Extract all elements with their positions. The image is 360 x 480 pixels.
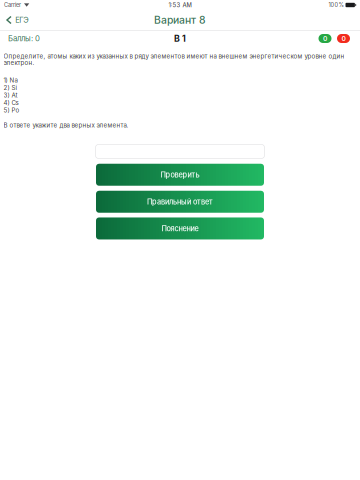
staticText: Carrier	[4, 2, 21, 8]
staticText: Вариант 8	[154, 14, 206, 26]
staticText: 0	[323, 34, 327, 43]
staticText: В 1	[174, 33, 186, 44]
staticText: Пояснение	[161, 224, 198, 233]
staticText: 100%	[328, 2, 343, 8]
staticText: ЕГЭ	[15, 15, 28, 24]
button[interactable]: 0	[318, 34, 331, 43]
staticText: Баллы: 0	[8, 34, 40, 43]
staticText: 0	[341, 34, 345, 43]
staticText: 1:53 AM	[168, 1, 191, 9]
button[interactable]: 0	[337, 34, 350, 43]
button[interactable]: ЕГЭ	[0, 10, 34, 30]
button[interactable]: Пояснение	[96, 217, 264, 239]
staticText: Определите, атомы каких из указанных в р…	[3, 52, 344, 66]
staticText: Проверить	[160, 170, 199, 179]
staticText: В ответе укажите два верных элемента.	[3, 121, 128, 129]
button[interactable]: Проверить	[96, 164, 264, 186]
staticText: Правильный ответ	[147, 197, 213, 206]
button[interactable]: Правильный ответ	[96, 191, 264, 213]
staticText: 1) Na 2) Si 3) At 4) Cs 5) Po	[3, 76, 19, 114]
